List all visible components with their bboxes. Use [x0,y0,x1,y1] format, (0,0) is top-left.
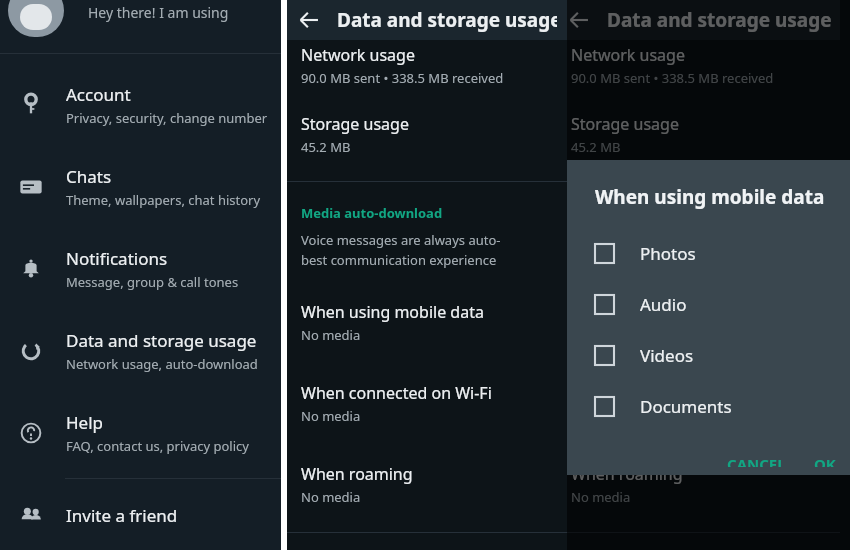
staticText: When connected on Wi-Fi [571,382,762,404]
staticText: Audio [640,293,687,316]
button[interactable]: Storage usage [301,113,563,156]
staticText: When roaming [571,463,683,485]
button[interactable]: Chats [0,152,281,222]
button[interactable]: Back [295,6,323,34]
button[interactable]: Help [0,398,281,468]
staticText: Invite a friend [66,504,178,527]
button[interactable]: CANCEL [713,446,800,475]
staticText: Photos [640,242,696,265]
staticText: Voice messages are always auto-downloade… [571,231,840,249]
staticText: 45.2 MB [571,138,621,156]
button[interactable]: Back [565,6,593,34]
staticText: FAQ, contact us, privacy policy [66,437,249,455]
staticText: When connected on Wi-Fi [301,382,492,404]
button[interactable]: Videos [567,330,850,381]
staticText: Media auto-download [301,204,443,222]
button[interactable]: When connected on Wi-Fi [557,374,840,433]
staticText: No media [571,488,631,506]
staticText: When using mobile data [571,301,754,323]
staticText: Documents [640,395,732,418]
staticText: No media [301,326,361,344]
button[interactable]: Profile photo [8,0,64,37]
staticText: Storage usage [301,113,409,135]
staticText: CANCEL [727,454,786,467]
staticText: Notifications [66,247,168,270]
staticText: Hey there! I am using WhatsApp [88,3,281,22]
staticText: 45.2 MB [301,138,351,156]
staticText: Data and storage usage [66,329,257,352]
button[interactable]: When using mobile data [557,293,840,352]
staticText: Storage usage [571,113,679,135]
staticText: Videos [640,344,694,367]
button[interactable]: When roaming [557,455,840,514]
staticText: Help [66,411,104,434]
button[interactable]: Documents [567,381,850,432]
staticText: 90.0 MB sent • 338.5 MB received [571,69,774,87]
staticText: Data and storage usage [607,7,832,33]
staticText: best communication experience [301,251,497,269]
button[interactable]: When connected on Wi-Fi [287,374,563,433]
button[interactable]: Invite a friend [0,487,281,543]
staticText: No media [301,488,361,506]
button[interactable]: When using mobile data [287,293,563,352]
staticText: best communication experience [571,251,767,269]
staticText: Chats [66,165,112,188]
staticText: Account [66,83,131,106]
staticText: When using mobile data [595,184,825,210]
staticText: No media [301,407,361,425]
button[interactable]: OK [800,446,850,475]
button[interactable]: When roaming [287,455,563,514]
staticText: Media auto-download [571,204,713,222]
button[interactable]: Storage usage [571,113,840,156]
button[interactable]: Photos [567,228,850,279]
staticText: No media [571,407,631,425]
staticText: Network usage [571,44,685,66]
staticText: Privacy, security, change number [66,109,268,127]
staticText: 90.0 MB sent • 338.5 MB received [301,69,504,87]
button[interactable]: Data and storage usage [0,316,281,386]
staticText: Theme, wallpapers, chat history [66,191,261,209]
button[interactable]: Account [0,70,281,140]
staticText: Network usage, auto-download [66,355,258,373]
staticText: When roaming [301,463,413,485]
button[interactable]: Audio [567,279,850,330]
staticText: OK [814,454,836,467]
staticText: Voice messages are always auto-downloade… [301,231,563,249]
staticText: When using mobile data [301,301,484,323]
button[interactable]: Notifications [0,234,281,304]
staticText: Data and storage usage [337,7,562,33]
staticText: Message, group & call tones [66,273,239,291]
staticText: Network usage [301,44,415,66]
